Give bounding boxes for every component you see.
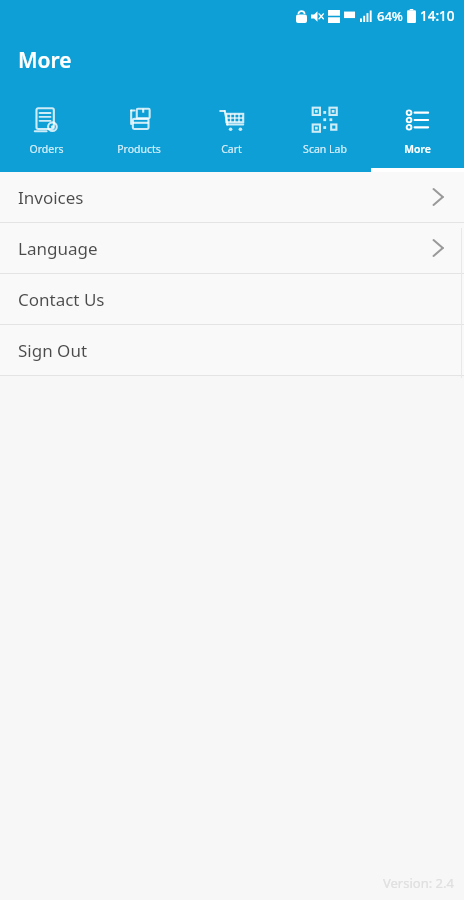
staticText: More [404, 142, 431, 156]
staticText: Invoices [18, 186, 430, 209]
staticText: Sign Out [18, 339, 446, 362]
button[interactable]: Sign Out [0, 325, 464, 375]
button[interactable]: Contact Us [0, 274, 464, 324]
staticText: Scan Lab [303, 142, 347, 156]
staticText: Version: 2.4 [383, 874, 454, 892]
button[interactable]: Products [92, 96, 185, 156]
staticText: Cart [221, 142, 242, 156]
staticText: 14:10 [420, 7, 455, 25]
staticText: Products [117, 142, 161, 156]
button[interactable]: Orders [0, 96, 92, 156]
staticText: 64% [377, 7, 403, 25]
button[interactable]: More [371, 96, 464, 156]
staticText: More [18, 46, 72, 75]
button[interactable]: Scan Lab [278, 96, 371, 156]
staticText: Language [18, 237, 430, 260]
button[interactable]: Invoices [0, 172, 464, 222]
button[interactable]: Language [0, 223, 464, 273]
button[interactable]: Cart [185, 96, 278, 156]
staticText: Contact Us [18, 288, 446, 311]
staticText: Orders [29, 142, 64, 156]
